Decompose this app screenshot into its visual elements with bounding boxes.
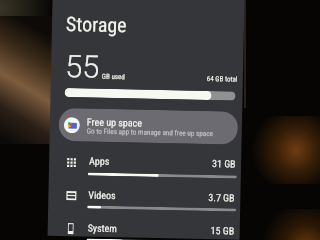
button[interactable] — [58, 149, 237, 186]
staticText: 3.7 GB — [208, 192, 235, 205]
other: Videos — [66, 191, 76, 200]
staticText: Go to Files app to manage and free up sp… — [87, 126, 214, 137]
staticText: Apps — [89, 155, 110, 168]
staticText: Videos — [88, 189, 116, 202]
other: Apps — [67, 158, 77, 168]
button[interactable]: Free up space — [58, 108, 238, 145]
staticText: Storage — [66, 12, 127, 36]
staticText: 15 GB — [211, 225, 235, 238]
staticText: GB used — [102, 73, 125, 81]
staticText: Free up space — [87, 116, 142, 130]
staticText: 31 GB — [212, 158, 236, 171]
staticText: System — [88, 222, 118, 235]
staticText: 55 — [65, 48, 100, 85]
button[interactable] — [57, 182, 237, 219]
other: System — [66, 223, 76, 234]
button[interactable] — [56, 214, 236, 240]
staticText: 64 GB total — [207, 75, 238, 84]
